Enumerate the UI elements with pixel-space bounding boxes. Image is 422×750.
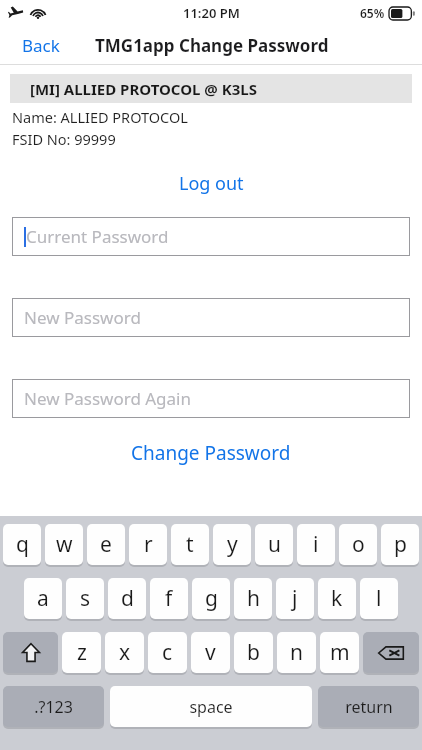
button[interactable]: Current Password [12,217,410,256]
staticText: Log out [179,171,244,196]
staticText: [MI] ALLIED PROTOCOL @ K3LS [30,79,257,99]
staticText: u [268,530,281,559]
button[interactable]: New Password [12,298,410,337]
button[interactable]: return [318,686,419,727]
staticText: x [119,638,131,667]
staticText: o [352,530,365,559]
button[interactable]: space [110,686,312,727]
staticText: p [394,530,407,559]
button[interactable]: b [234,632,273,673]
staticText: b [247,638,260,667]
button[interactable]: p [381,524,419,565]
staticText: g [205,584,218,613]
button[interactable]: Log out [0,171,422,196]
staticText: FSID No: 99999 [12,129,116,149]
button[interactable]: s [66,578,104,619]
staticText: e [100,530,112,559]
button[interactable]: t [171,524,209,565]
staticText: z [77,638,87,667]
staticText: m [330,638,350,667]
button[interactable]: g [192,578,230,619]
staticText: space [189,696,233,718]
button[interactable]: v [191,632,230,673]
staticText: l [376,584,382,613]
staticText: f [165,584,173,613]
button[interactable]: Backspace [363,632,419,673]
button[interactable]: Shift [3,632,58,673]
button[interactable]: j [276,578,314,619]
button[interactable]: n [277,632,316,673]
staticText: .?123 [34,696,73,718]
staticText: Name: ALLIED PROTOCOL [12,107,188,127]
button[interactable]: i [297,524,335,565]
staticText: a [37,584,49,613]
staticText: Change Password [131,440,291,466]
staticText: Back [22,34,60,57]
button[interactable]: q [3,524,41,565]
button[interactable]: a [24,578,62,619]
button[interactable]: .?123 [3,686,104,727]
button[interactable]: k [318,578,356,619]
button[interactable]: m [320,632,359,673]
button[interactable]: y [213,524,251,565]
button[interactable]: w [45,524,83,565]
staticText: TMG1app Change Password [95,34,329,57]
staticText: w [56,530,73,559]
staticText: return [345,696,393,718]
button[interactable]: d [108,578,146,619]
staticText: r [144,530,153,559]
staticText: Current Password [26,225,169,248]
button[interactable]: Change Password [0,440,422,466]
staticText: y [227,530,238,559]
staticText: 11:20 PM [183,4,240,22]
staticText: i [313,530,319,559]
staticText: k [331,584,343,613]
button[interactable]: e [87,524,125,565]
staticText: j [292,584,298,613]
button[interactable]: New Password Again [12,379,410,418]
staticText: c [162,638,173,667]
staticText: v [205,638,216,667]
button[interactable]: o [339,524,377,565]
button[interactable]: f [150,578,188,619]
staticText: n [290,638,303,667]
staticText: 65% [360,5,385,21]
staticText: d [121,584,134,613]
staticText: h [247,584,260,613]
button[interactable]: c [148,632,187,673]
button[interactable]: u [255,524,293,565]
button[interactable]: z [62,632,101,673]
button[interactable]: r [129,524,167,565]
staticText: New Password [24,306,141,329]
button[interactable]: Back [16,30,66,61]
button[interactable]: h [234,578,272,619]
staticText: q [16,530,29,559]
staticText: s [80,584,91,613]
button[interactable]: x [105,632,144,673]
staticText: New Password Again [24,387,192,410]
button[interactable]: l [360,578,398,619]
staticText: t [186,530,194,559]
